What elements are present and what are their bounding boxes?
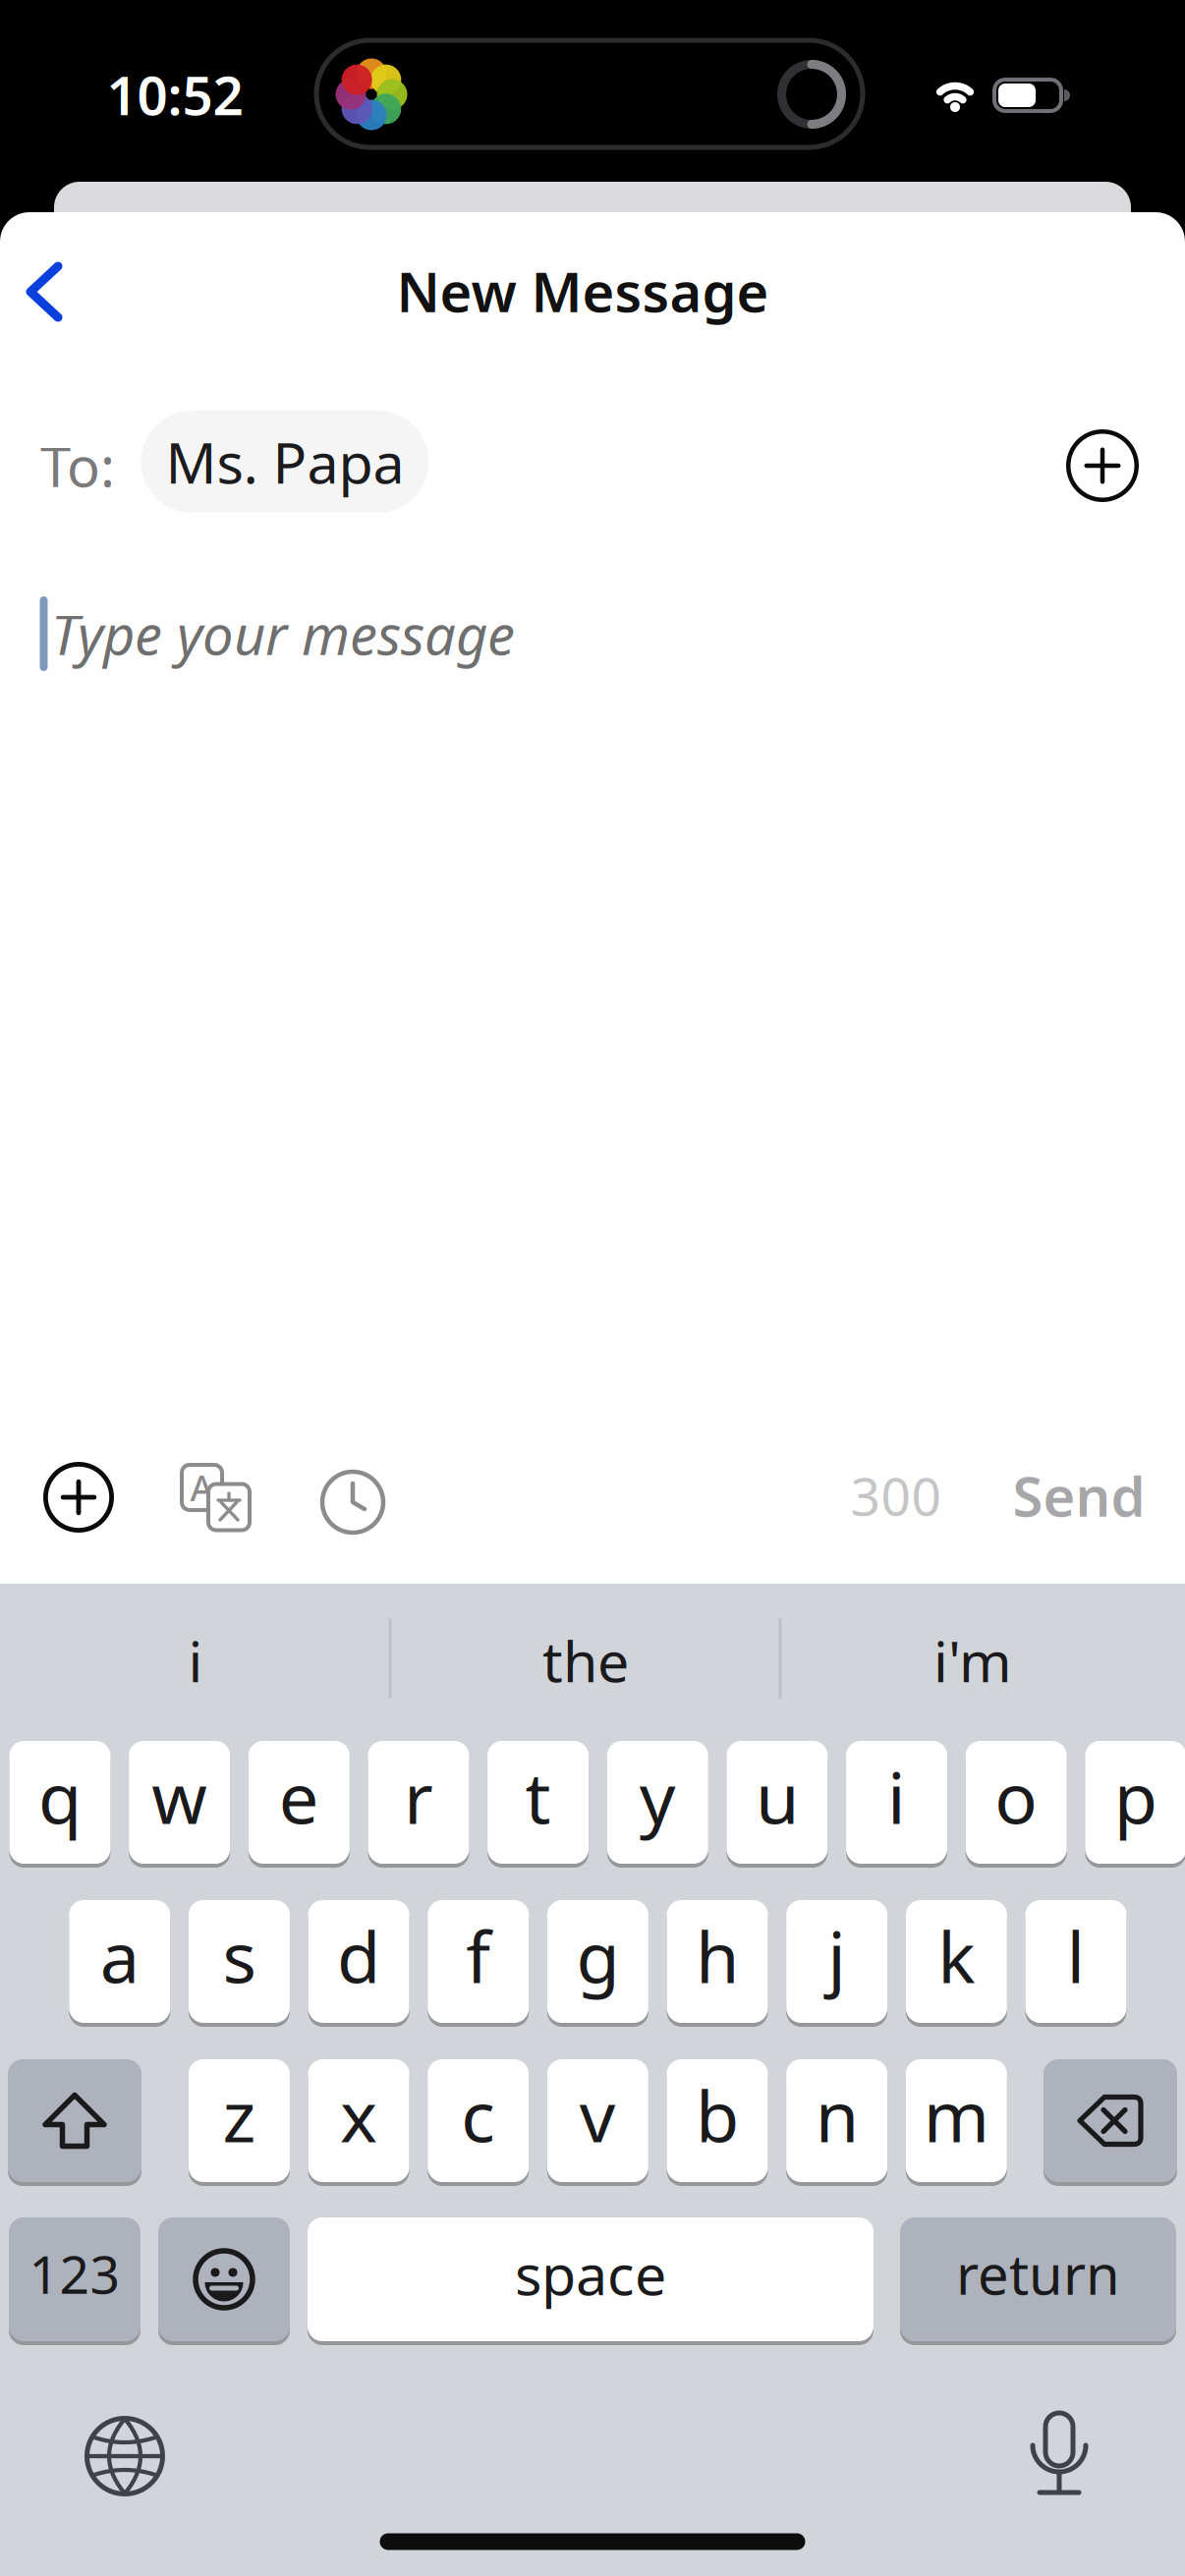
button[interactable] (1066, 429, 1139, 502)
staticText: return (956, 2237, 1120, 2310)
staticText: z (222, 2068, 256, 2162)
staticText: A (190, 1464, 214, 1511)
button[interactable]: t (487, 1739, 589, 1866)
button[interactable]: d (308, 1898, 409, 2025)
staticText: r (404, 1749, 433, 1843)
button[interactable]: i (846, 1739, 947, 1866)
staticText: Ms. Papa (166, 424, 404, 499)
button[interactable]: e (248, 1739, 350, 1866)
button[interactable] (158, 2215, 290, 2343)
button[interactable]: c (428, 2057, 529, 2184)
button[interactable]: m (906, 2057, 1007, 2184)
button[interactable]: p (1085, 1739, 1185, 1866)
button[interactable] (1032, 2413, 1087, 2495)
staticText: q (38, 1749, 82, 1843)
button[interactable] (85, 2416, 165, 2496)
button[interactable]: j (786, 1898, 887, 2025)
button[interactable]: i'm (781, 1601, 1164, 1719)
staticText: w (152, 1749, 208, 1843)
staticText: space (515, 2236, 666, 2311)
staticText: Send (1013, 1459, 1145, 1532)
button[interactable]: y (607, 1739, 708, 1866)
button[interactable]: q (9, 1739, 111, 1866)
staticText: e (279, 1749, 319, 1843)
button[interactable]: Send (1000, 1451, 1157, 1540)
button[interactable]: g (547, 1898, 648, 2025)
button[interactable]: f (428, 1898, 529, 2025)
button[interactable] (43, 1462, 114, 1533)
button[interactable]: the (394, 1601, 777, 1719)
staticText: j (828, 1909, 846, 2003)
staticText: t (525, 1749, 551, 1843)
staticText: m (923, 2068, 989, 2162)
staticText: 300 (850, 1461, 942, 1530)
staticText: i (188, 1623, 203, 1698)
button[interactable] (1044, 2057, 1177, 2184)
staticText: a (100, 1909, 139, 2003)
staticText: c (461, 2068, 495, 2162)
button[interactable]: w (129, 1739, 230, 1866)
button[interactable]: Ms. Papa (141, 411, 429, 513)
staticText: p (1114, 1749, 1157, 1843)
button[interactable]: l (1025, 1898, 1127, 2025)
button[interactable]: a (69, 1898, 170, 2025)
staticText: g (576, 1909, 619, 2003)
staticText: u (756, 1749, 799, 1843)
button[interactable]: i (4, 1601, 387, 1719)
staticText: i'm (933, 1623, 1012, 1698)
staticText: b (696, 2068, 739, 2162)
button[interactable] (26, 262, 63, 321)
staticText: New Message (396, 254, 769, 327)
staticText: d (337, 1909, 380, 2003)
staticText: the (542, 1623, 629, 1698)
button[interactable]: h (667, 1898, 768, 2025)
staticText: x (340, 2068, 377, 2162)
button[interactable]: r (368, 1739, 469, 1866)
staticText: s (222, 1909, 256, 2003)
staticText: y (639, 1749, 676, 1843)
button[interactable]: 123 (9, 2215, 141, 2343)
button[interactable] (8, 2057, 141, 2184)
button[interactable]: space (308, 2215, 874, 2343)
staticText: l (1067, 1909, 1085, 2003)
button[interactable]: x (308, 2057, 409, 2184)
staticText: n (815, 2068, 858, 2162)
staticText: k (938, 1909, 975, 2003)
staticText: To: (40, 429, 115, 502)
button[interactable]: b (667, 2057, 768, 2184)
button[interactable]: n (786, 2057, 887, 2184)
button[interactable]: v (547, 2057, 648, 2184)
button[interactable]: z (189, 2057, 290, 2184)
staticText: f (466, 1909, 491, 2003)
staticText: h (696, 1909, 739, 2003)
button[interactable]: s (189, 1898, 290, 2025)
button[interactable]: o (966, 1739, 1067, 1866)
button[interactable] (320, 1470, 385, 1535)
button[interactable]: u (727, 1739, 828, 1866)
staticText: 123 (29, 2239, 120, 2308)
staticText: Type your message (51, 597, 515, 670)
staticText: o (995, 1749, 1038, 1843)
button[interactable]: A (181, 1464, 250, 1531)
staticText: 10:52 (107, 59, 243, 130)
button[interactable]: k (906, 1898, 1007, 2025)
staticText: i (887, 1749, 906, 1843)
button[interactable]: return (900, 2215, 1176, 2343)
staticText: v (580, 2068, 616, 2162)
